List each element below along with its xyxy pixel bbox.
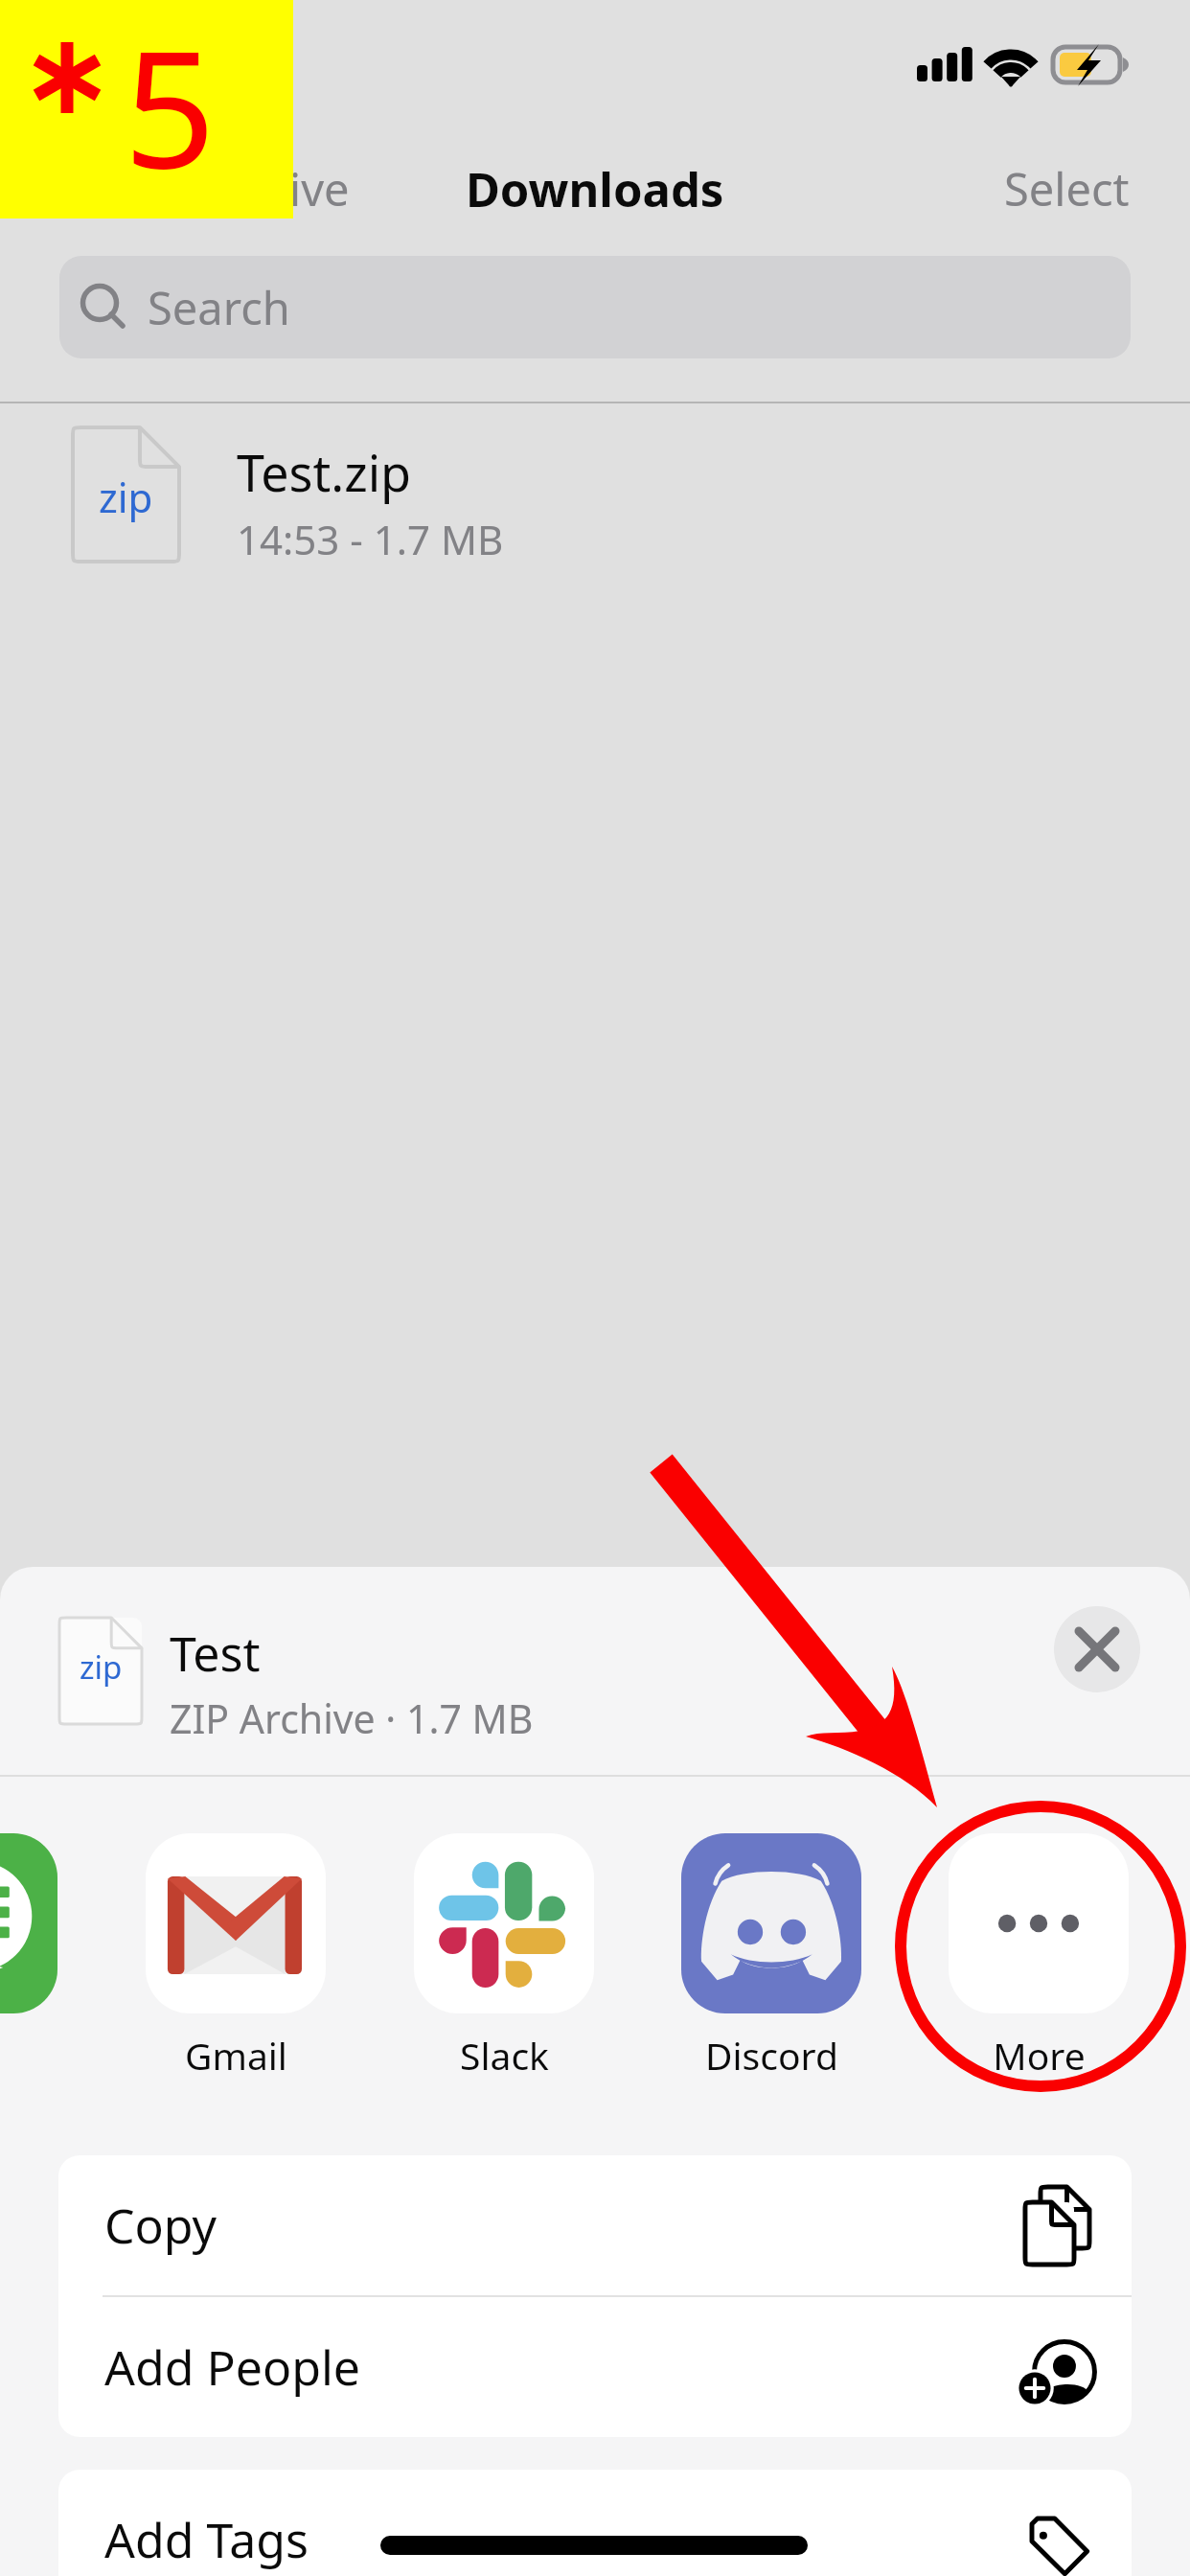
button[interactable]: Add Tags bbox=[58, 2470, 1132, 2576]
button[interactable]: Gmail bbox=[146, 1833, 326, 2081]
staticText: 14:53 - 1.7 MB bbox=[237, 512, 504, 566]
staticText: Add Tags bbox=[104, 2507, 309, 2572]
staticText: Archive bbox=[194, 158, 350, 219]
staticText: Test.zip bbox=[237, 438, 412, 506]
button[interactable]: Discord bbox=[681, 1833, 861, 2081]
staticText: 5 bbox=[124, 0, 217, 214]
staticText: More bbox=[993, 2030, 1086, 2081]
staticText: Copy bbox=[104, 2193, 217, 2258]
button[interactable]: zip bbox=[0, 403, 1190, 586]
staticText: Downloads bbox=[466, 157, 724, 221]
staticText: ZIP Archive · 1.7 MB bbox=[170, 1691, 534, 1745]
button[interactable]: Close bbox=[1054, 1606, 1140, 1692]
button[interactable]: Copy bbox=[58, 2155, 1132, 2295]
staticText: Add People bbox=[104, 2334, 360, 2400]
button[interactable]: Slack bbox=[414, 1833, 594, 2081]
button[interactable]: Add People bbox=[58, 2297, 1132, 2437]
button[interactable]: More bbox=[949, 1833, 1129, 2081]
staticText: Gmail bbox=[185, 2030, 287, 2081]
staticText: Discord bbox=[705, 2030, 838, 2081]
button[interactable]: Messages bbox=[0, 1833, 57, 2081]
staticText: zip bbox=[99, 470, 153, 524]
staticText: Slack bbox=[460, 2030, 549, 2081]
staticText: Test bbox=[170, 1621, 261, 1686]
button[interactable]: Select bbox=[1004, 158, 1130, 219]
button[interactable]: Search bbox=[59, 256, 1131, 358]
button[interactable]: Archive bbox=[155, 158, 350, 219]
staticText: Search bbox=[148, 277, 290, 338]
staticText: zip bbox=[80, 1645, 123, 1689]
